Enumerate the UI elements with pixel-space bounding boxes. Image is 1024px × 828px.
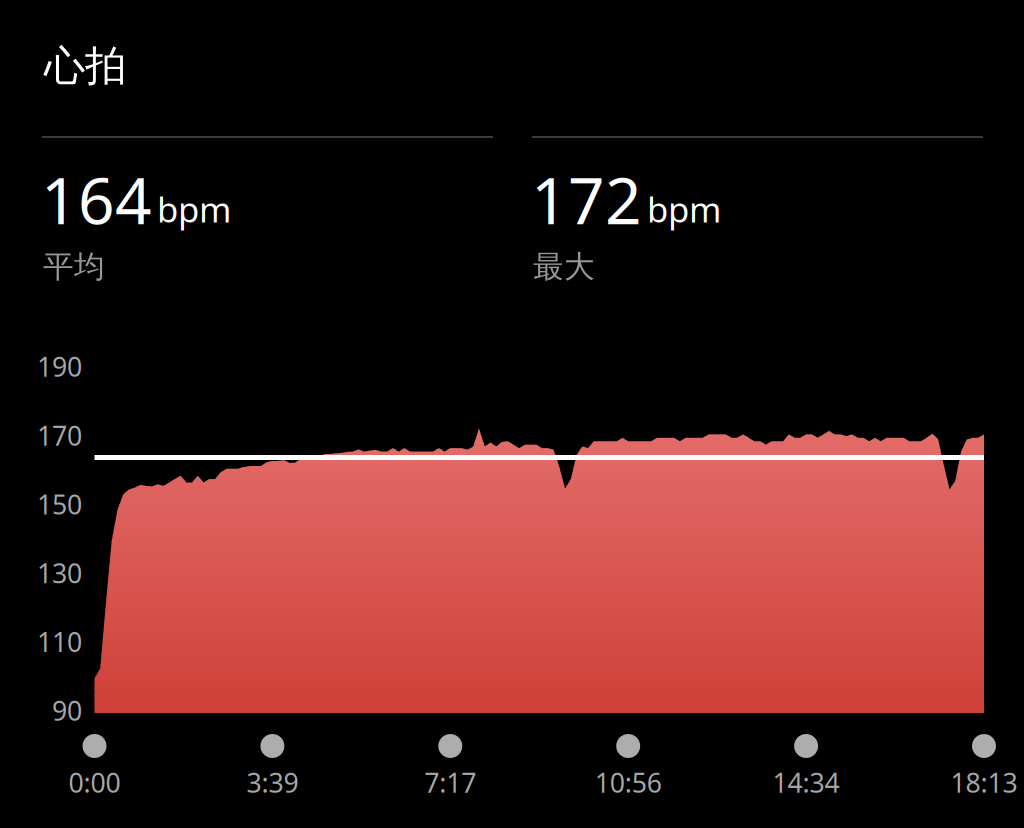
- staticText: 7:17: [424, 765, 476, 800]
- staticText: 150: [37, 486, 82, 522]
- staticText: 172: [531, 157, 642, 242]
- staticText: bpm: [157, 186, 231, 232]
- staticText: 164: [41, 157, 152, 242]
- staticText: 110: [37, 624, 82, 659]
- staticText: 0:00: [68, 765, 120, 800]
- staticText: 心拍: [44, 41, 126, 91]
- staticText: 130: [37, 555, 82, 591]
- staticText: 18:13: [950, 765, 1017, 800]
- staticText: 最大: [533, 248, 595, 286]
- staticText: bpm: [647, 186, 721, 232]
- staticText: 3:39: [246, 765, 298, 800]
- staticText: 170: [37, 418, 82, 453]
- staticText: 90: [52, 693, 82, 728]
- staticText: 平均: [43, 248, 105, 286]
- staticText: 10:56: [595, 765, 662, 800]
- staticText: 190: [37, 349, 82, 384]
- staticText: 14:34: [773, 765, 840, 800]
